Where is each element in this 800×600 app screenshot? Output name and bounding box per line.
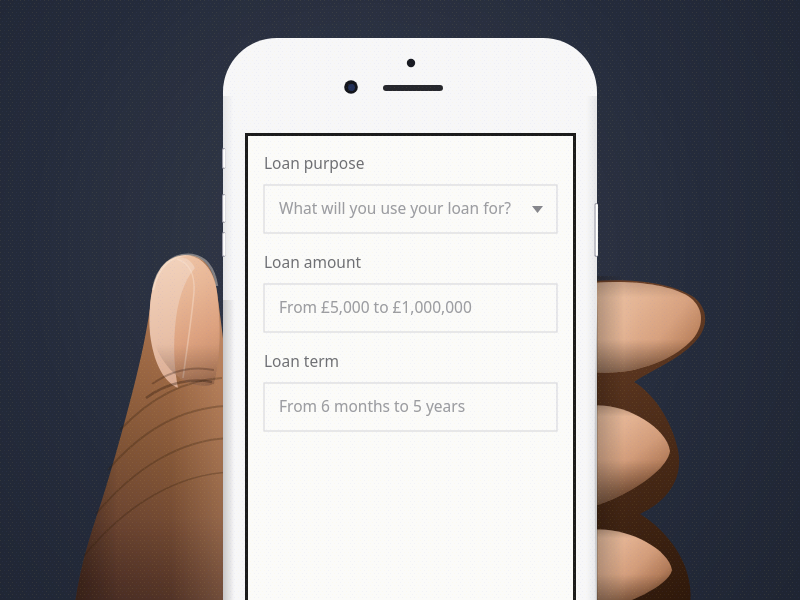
staticText: What will you use your loan for? (279, 197, 512, 218)
button[interactable]: Loan term (264, 383, 557, 431)
staticText: From 6 months to 5 years (279, 395, 466, 416)
button[interactable]: Loan purpose (264, 185, 557, 233)
staticText: From £5,000 to £1,000,000 (279, 296, 472, 317)
staticText: Loan term (264, 350, 340, 371)
button[interactable]: Loan amount (264, 284, 557, 332)
staticText: Loan purpose (264, 152, 365, 173)
staticText: Loan amount (264, 251, 362, 272)
